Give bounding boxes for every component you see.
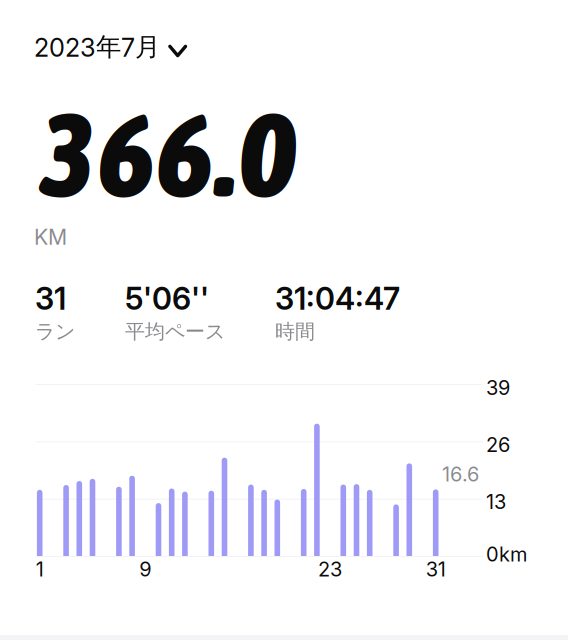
staticText: ラン xyxy=(35,319,75,344)
staticText: 23 xyxy=(318,557,342,581)
staticText: 31 xyxy=(426,557,446,581)
button[interactable]: 2023年7月 xyxy=(34,31,214,63)
staticText: 5'06'' xyxy=(125,280,209,317)
staticText: 1 xyxy=(36,557,44,581)
staticText: 2023年7月 xyxy=(34,31,160,63)
staticText: 16.6 xyxy=(442,462,479,486)
staticText: 平均ペース xyxy=(125,319,225,344)
staticText: 13 xyxy=(486,489,506,514)
staticText: 39 xyxy=(486,375,510,400)
staticText: 時間 xyxy=(275,319,315,344)
staticText: 0km xyxy=(486,542,527,566)
staticText: 9 xyxy=(139,557,151,581)
staticText: 31:04:47 xyxy=(275,280,400,317)
staticText: 26 xyxy=(486,432,510,457)
staticText: KM xyxy=(34,224,67,250)
staticText: 31 xyxy=(35,280,66,317)
staticText: 366.0 xyxy=(40,87,295,221)
